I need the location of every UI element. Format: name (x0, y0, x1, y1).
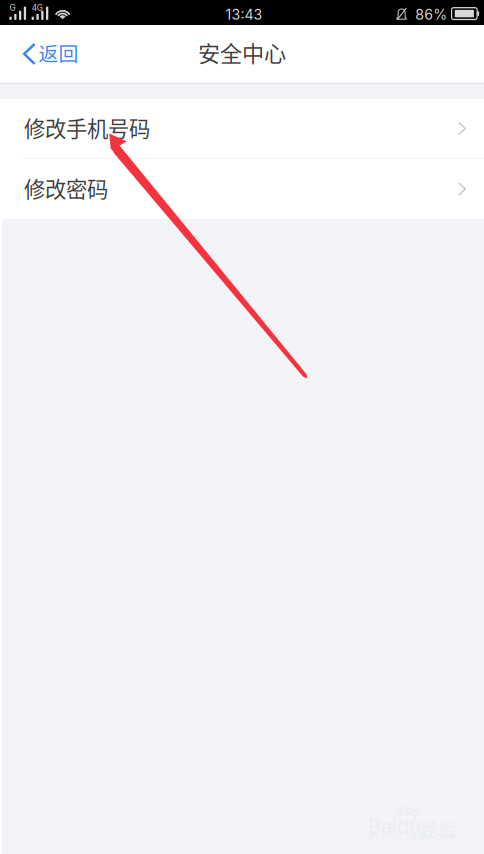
staticText: 修改密码 (24, 173, 108, 203)
staticText: 86% (415, 6, 447, 23)
staticText: 修改手机号码 (24, 112, 150, 143)
staticText: 4G (32, 3, 43, 13)
staticText: 返回 (39, 38, 79, 67)
button[interactable]: 修改手机号码 (0, 99, 484, 158)
staticText: Baidu (368, 814, 421, 838)
staticText: 13:43 (225, 6, 262, 23)
button[interactable]: 返回 (0, 25, 91, 83)
button[interactable]: 修改密码 (0, 159, 484, 219)
staticText: G (10, 3, 16, 13)
staticText: 安全中心 (198, 36, 286, 68)
